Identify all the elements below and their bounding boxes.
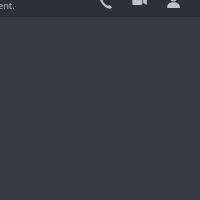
staticText: ent. — [0, 0, 15, 11]
button[interactable]: Call — [97, 0, 119, 10]
button[interactable]: Video call — [131, 0, 153, 10]
button[interactable]: Contact info — [165, 0, 187, 10]
